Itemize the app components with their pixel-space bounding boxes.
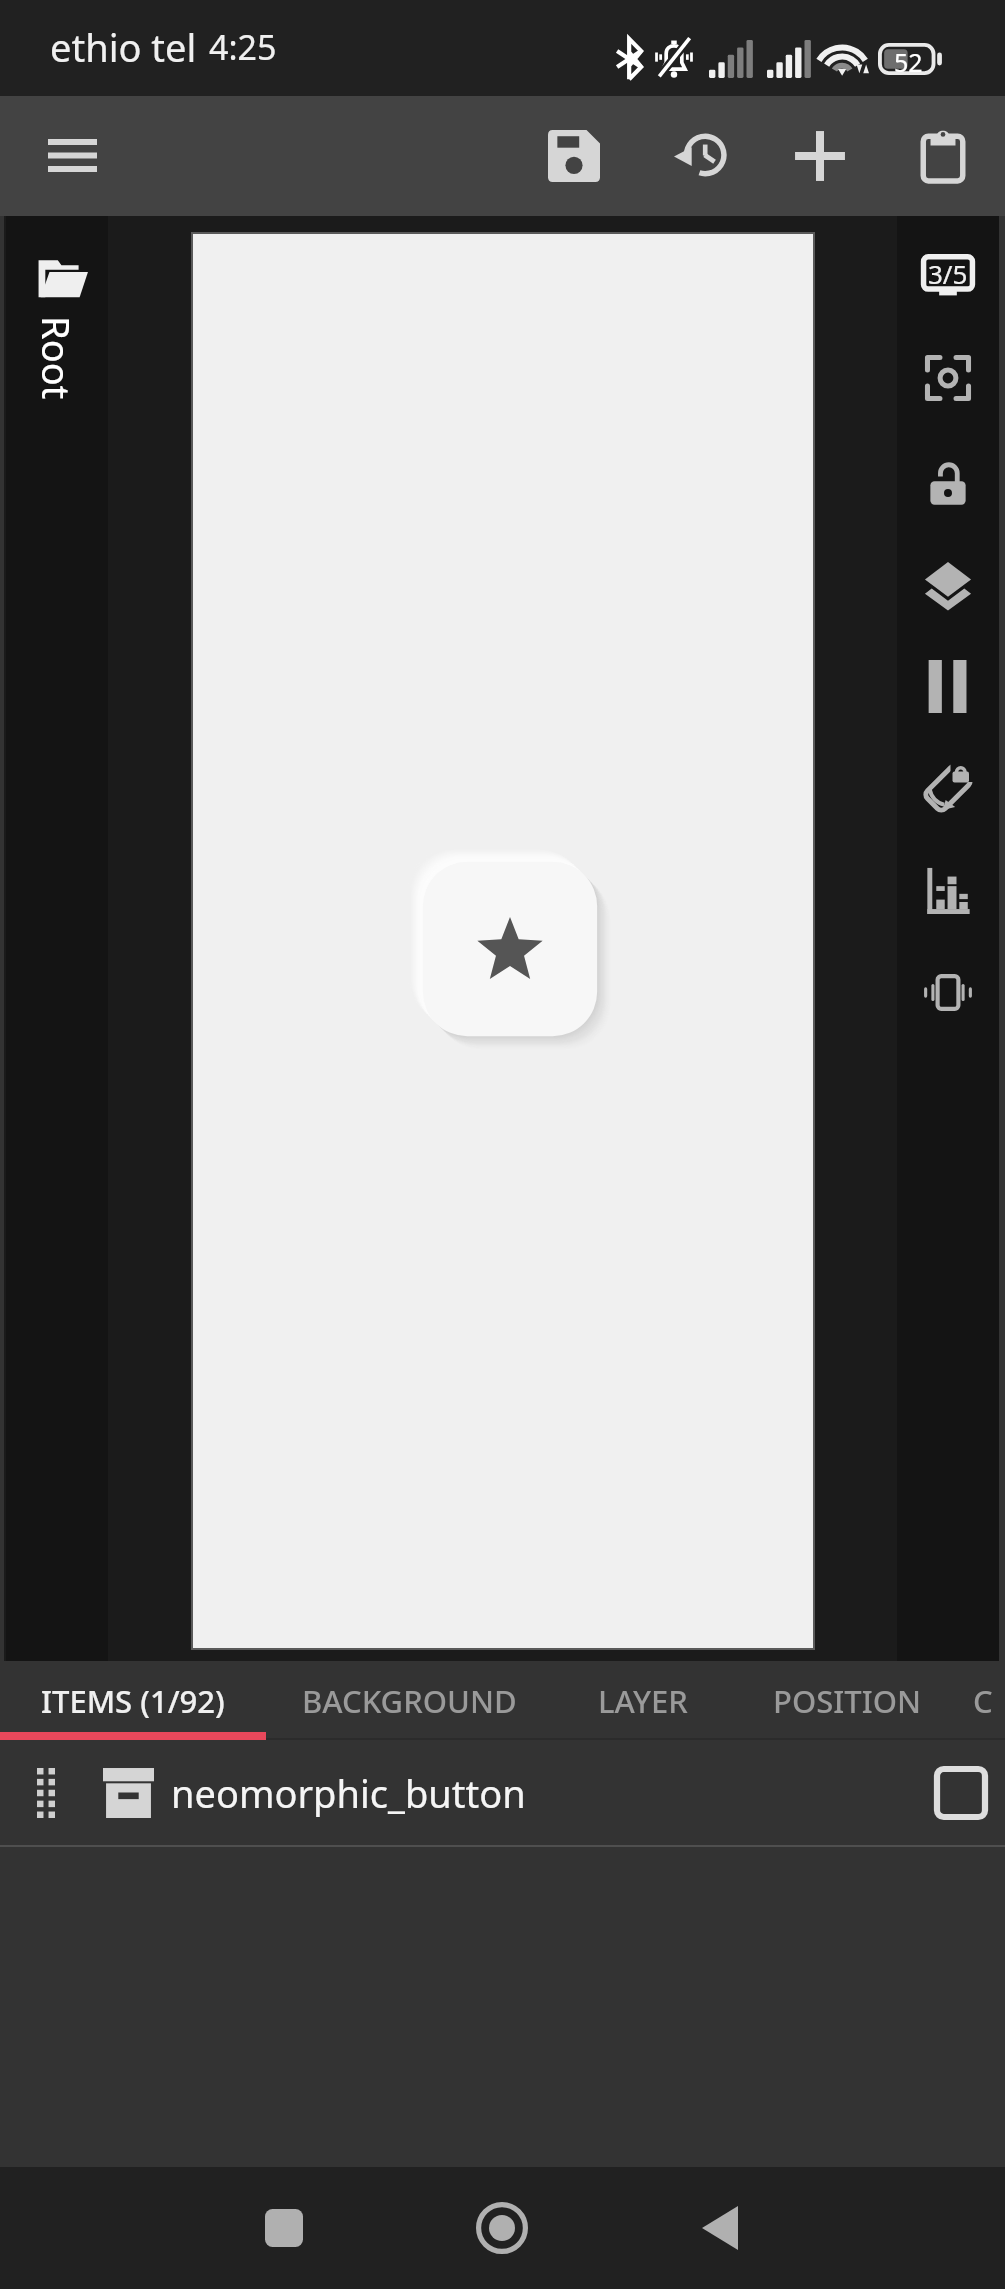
staticText: 4:25 [209, 24, 277, 70]
button[interactable]: LAYER [552, 1661, 734, 1740]
button[interactable]: Screen 3 of 5 [897, 225, 999, 327]
button[interactable]: Statistics [897, 839, 999, 941]
button[interactable]: neomorphic_button [0, 1740, 1005, 1845]
staticText: 52 [894, 45, 923, 79]
staticText: LAYER [598, 1680, 688, 1722]
staticText: POSITION [773, 1680, 921, 1722]
staticText: BACKGROUND [302, 1680, 517, 1722]
button[interactable]: ITEMS (1/92) [0, 1661, 266, 1740]
button[interactable]: C [960, 1661, 1005, 1740]
button[interactable]: Focus [897, 327, 999, 429]
button[interactable]: Lock [897, 432, 999, 534]
button[interactable]: Add [765, 96, 875, 216]
button[interactable]: Menu [18, 96, 126, 216]
button[interactable]: Save [519, 96, 629, 216]
button[interactable]: Back [660, 2167, 780, 2289]
staticText: ITEMS (1/92) [41, 1680, 225, 1722]
button[interactable]: History [645, 96, 755, 216]
button[interactable]: Root folder [14, 236, 106, 436]
button[interactable]: POSITION [734, 1661, 960, 1740]
button[interactable]: Rotation lock [897, 737, 999, 839]
staticText: neomorphic_button [171, 1767, 526, 1819]
staticText: 3/5 [928, 256, 968, 291]
button[interactable]: Pause [897, 635, 999, 737]
button[interactable]: Recent apps [224, 2167, 344, 2289]
button[interactable]: BACKGROUND [266, 1661, 552, 1740]
button[interactable]: Select item [921, 1753, 1001, 1833]
button[interactable]: Layers [897, 534, 999, 636]
button[interactable]: Favorite [405, 844, 615, 1054]
staticText: Root [35, 316, 83, 400]
staticText: C [973, 1680, 993, 1722]
button[interactable]: Vibrate [897, 941, 999, 1043]
button[interactable]: Clipboard [888, 96, 998, 216]
staticText: ethio tel [50, 21, 197, 73]
button[interactable]: Home [442, 2167, 562, 2289]
